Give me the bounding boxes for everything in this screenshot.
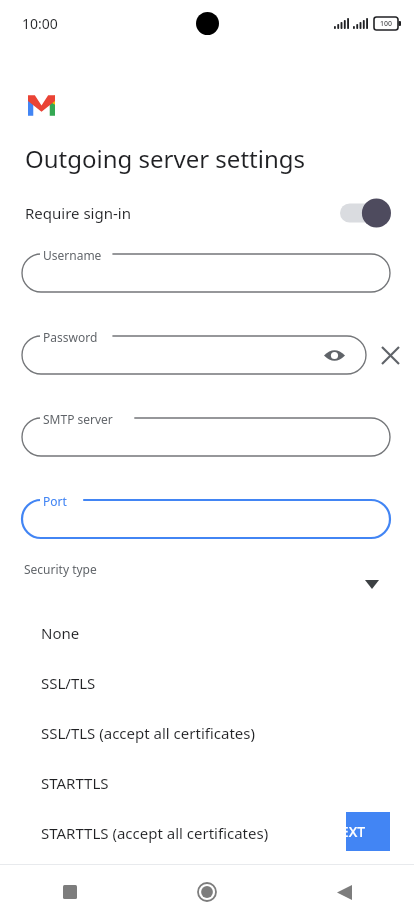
staticText: Require sign-in [25,203,131,223]
button[interactable]: SSL/TLS (accept all certificates) [17,708,346,758]
button[interactable]: Recents [46,868,94,916]
staticText: SSL/TLS (accept all certificates) [41,723,255,743]
button[interactable]: NEXT [306,812,390,851]
button[interactable]: Clear [366,331,414,379]
button[interactable]: Require sign-in [0,191,414,235]
button[interactable]: Back [320,868,368,916]
staticText: SSL/TLS [41,673,96,693]
button[interactable]: Show password [318,339,350,371]
staticText: Outgoing server settings [25,142,306,175]
staticText: SMTP server [43,411,113,427]
button[interactable]: Username [22,243,390,303]
button[interactable]: Require sign-in [340,197,392,229]
button[interactable]: Home [183,868,231,916]
button[interactable]: STARTTLS (accept all certificates) [17,808,346,858]
staticText: Username [43,247,102,263]
staticText: Password [43,329,98,345]
button[interactable]: STARTTLS [17,758,346,808]
button[interactable]: None [17,608,346,658]
button[interactable]: SSL/TLS [17,658,346,708]
staticText: None [41,623,80,643]
button[interactable]: SMTP server [22,407,390,467]
staticText: Security type [24,561,97,577]
staticText: Port [43,493,67,509]
staticText: NEXT [330,822,366,841]
button[interactable]: Password [22,325,366,385]
staticText: 10:00 [22,14,58,33]
button[interactable]: Security type [0,561,414,617]
button[interactable]: Port [22,489,390,549]
staticText: STARTTLS [41,773,109,793]
staticText: 100 [380,19,393,29]
staticText: STARTTLS (accept all certificates) [41,823,269,843]
